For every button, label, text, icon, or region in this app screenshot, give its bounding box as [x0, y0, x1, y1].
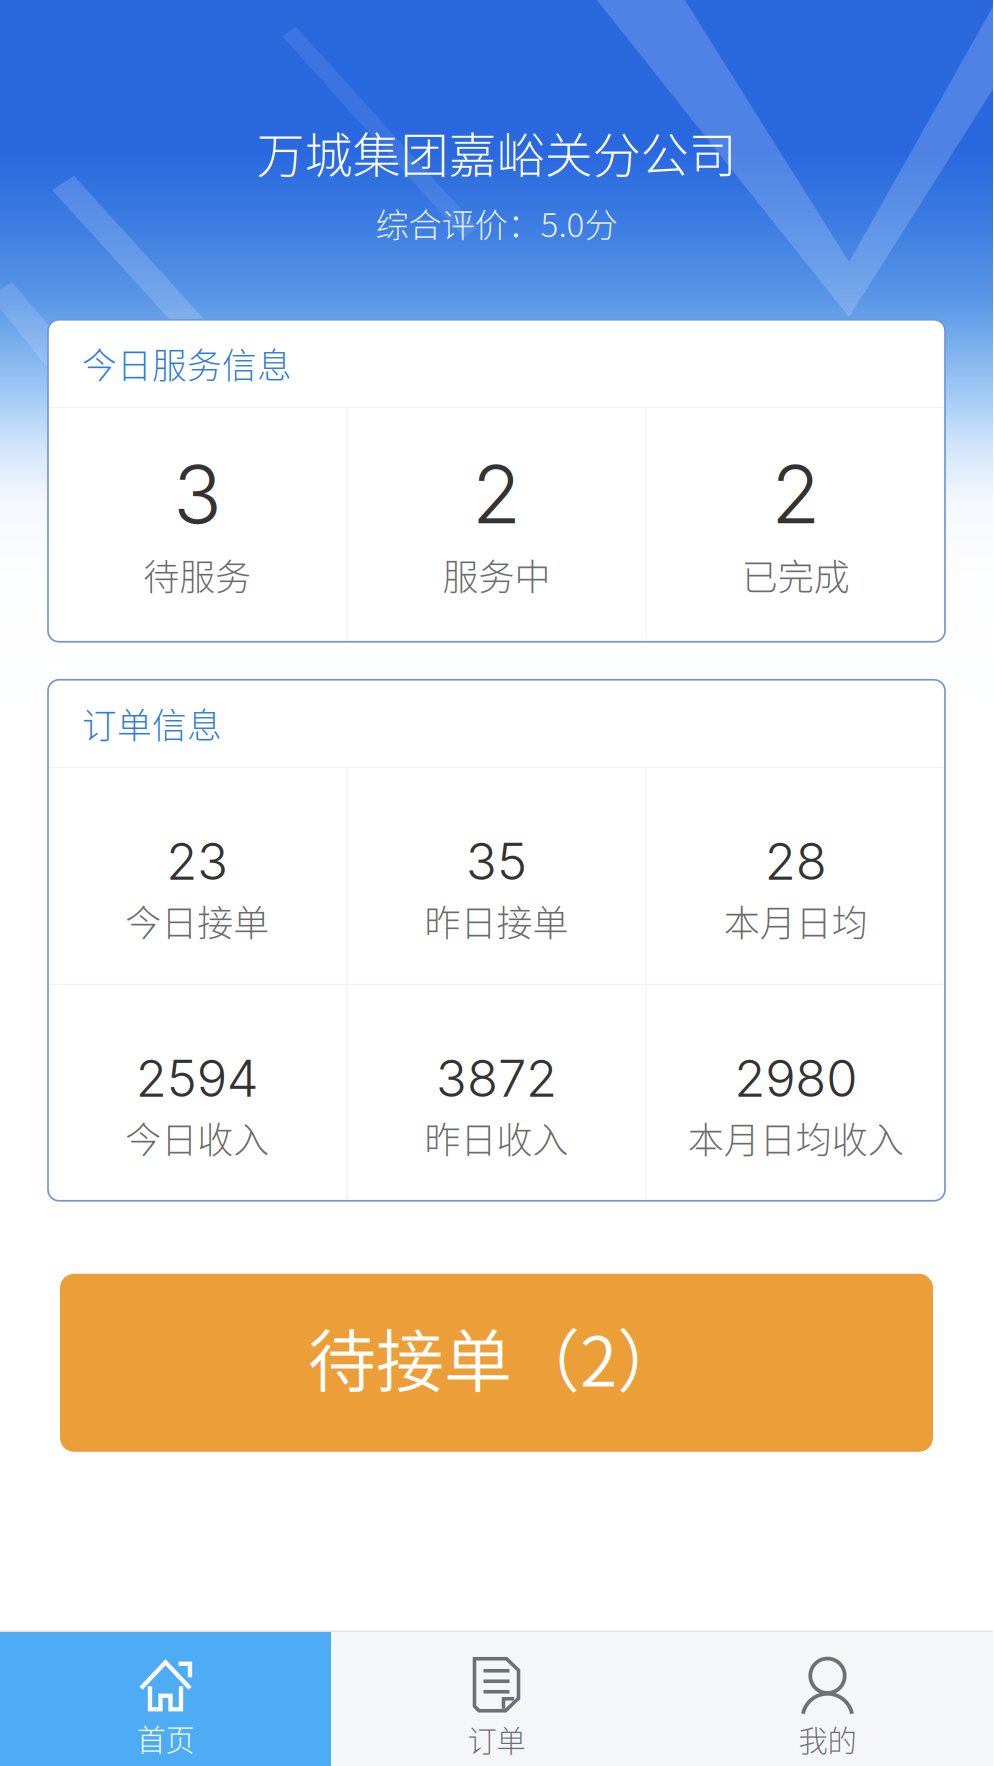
staticText: 3	[173, 446, 221, 543]
button[interactable]: 待接单（2）	[60, 1274, 933, 1452]
staticText: 今日接单	[125, 895, 269, 947]
staticText: 2	[771, 446, 820, 543]
staticText: 首页	[136, 1717, 194, 1759]
staticText: 待服务	[143, 549, 251, 601]
staticText: 服务中	[442, 549, 550, 601]
staticText: 昨日接单	[424, 895, 568, 947]
staticText: 本月日均	[724, 895, 868, 947]
staticText: 2980	[734, 1048, 857, 1109]
staticText: 今日收入	[125, 1112, 269, 1164]
staticText: 订单	[467, 1718, 525, 1760]
staticText: 待接单（2）	[308, 1307, 685, 1406]
staticText: 已完成	[742, 549, 850, 601]
staticText: 我的	[798, 1718, 856, 1760]
button[interactable]: 订单	[331, 1632, 662, 1766]
staticText: 35	[466, 831, 527, 892]
staticText: 3872	[436, 1048, 557, 1109]
staticText: 23	[166, 831, 228, 892]
staticText: 本月日均收入	[688, 1112, 904, 1164]
staticText: 综合评价：5.0分	[375, 198, 617, 247]
button[interactable]: 首页	[0, 1632, 331, 1766]
staticText: 万城集团嘉峪关分公司	[256, 117, 736, 186]
staticText: 订单信息	[82, 698, 222, 748]
staticText: 昨日收入	[424, 1112, 568, 1164]
staticText: 2	[472, 446, 521, 543]
button[interactable]: 我的	[662, 1632, 993, 1766]
staticText: 2594	[136, 1048, 259, 1109]
staticText: 今日服务信息	[82, 338, 292, 388]
staticText: 28	[765, 831, 827, 892]
